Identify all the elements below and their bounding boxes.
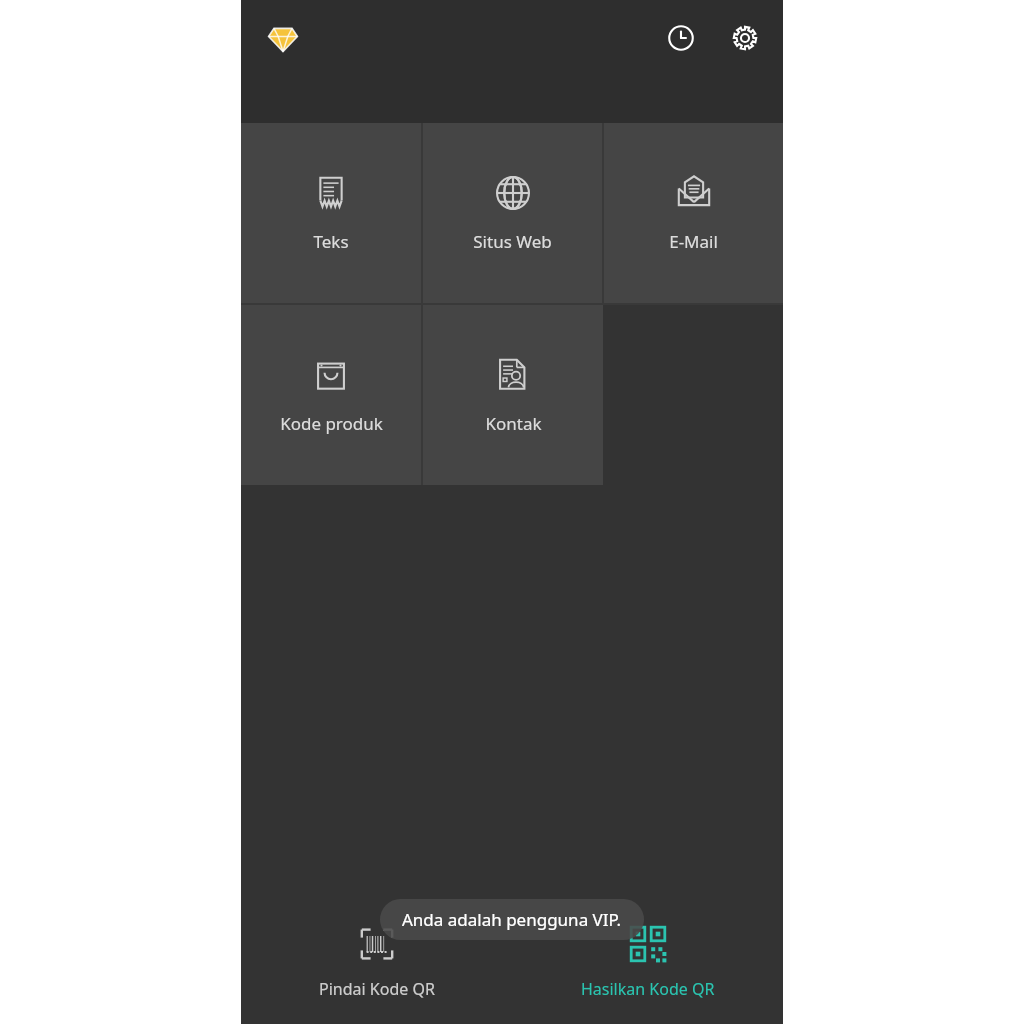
button[interactable]: Kode produk: [241, 305, 421, 485]
button[interactable]: Hasilkan Kode QR: [512, 900, 783, 1024]
button[interactable]: Teks: [241, 123, 421, 303]
staticText: Anda adalah pengguna VIP.: [402, 908, 622, 931]
button[interactable]: E-Mail: [604, 123, 783, 303]
button[interactable]: Kontak: [423, 305, 603, 485]
staticText: Teks: [313, 230, 349, 253]
staticText: Kontak: [485, 412, 542, 435]
button[interactable]: Settings: [721, 14, 769, 62]
button[interactable]: Pindai Kode QR: [241, 900, 512, 1024]
staticText: Situs Web: [473, 230, 552, 253]
button[interactable]: Situs Web: [423, 123, 602, 303]
staticText: Hasilkan Kode QR: [581, 978, 715, 1000]
staticText: E-Mail: [669, 230, 718, 253]
button[interactable]: VIP: [261, 16, 305, 60]
button[interactable]: History: [657, 14, 705, 62]
staticText: Kode produk: [280, 412, 383, 435]
staticText: Pindai Kode QR: [319, 978, 435, 1000]
